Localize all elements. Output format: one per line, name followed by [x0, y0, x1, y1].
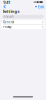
staticText: General	[3, 20, 14, 24]
staticText: Settings	[2, 9, 19, 14]
staticText: 9:41	[3, 0, 10, 5]
staticText: Privacy	[3, 25, 11, 29]
staticText: Search	[6, 15, 14, 18]
staticText: Edit	[38, 4, 44, 9]
button[interactable]: More	[34, 4, 38, 9]
button[interactable]: Search	[2, 15, 44, 19]
button[interactable]: Privacy	[1, 25, 45, 29]
button[interactable]: General	[1, 20, 45, 24]
button[interactable]: Edit	[38, 4, 44, 9]
button[interactable]: Back	[2, 4, 7, 9]
